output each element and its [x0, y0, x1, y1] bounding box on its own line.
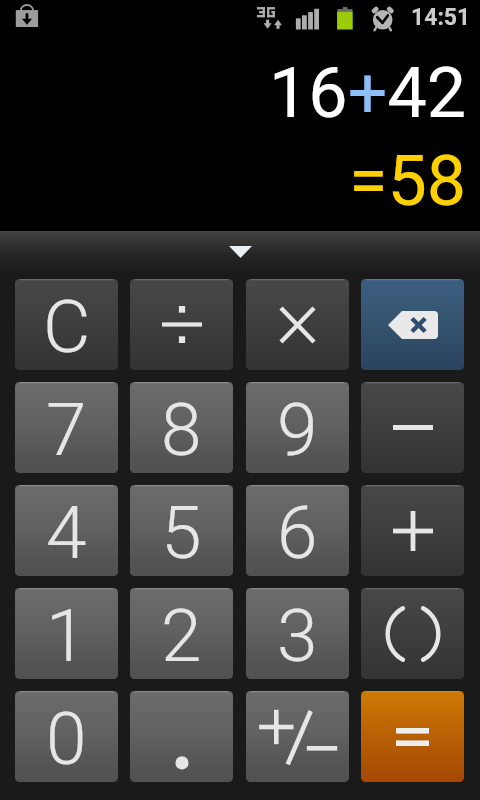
button[interactable]: 4 [15, 485, 118, 576]
staticText: 14:51 [411, 4, 471, 31]
button[interactable]: Decimal point [130, 691, 233, 782]
staticText: 7 [46, 387, 87, 473]
button[interactable]: 2 [130, 588, 233, 679]
button[interactable]: Collapse keypad [0, 231, 480, 272]
staticText: 0 [46, 696, 87, 782]
button[interactable]: 5 [130, 485, 233, 576]
staticText: 6 [277, 490, 318, 576]
staticText: 2 [161, 593, 202, 679]
staticText: 9 [277, 387, 318, 473]
button[interactable]: 6 [246, 485, 349, 576]
button[interactable]: Divide [130, 279, 233, 370]
button[interactable]: 0 [15, 691, 118, 782]
button[interactable]: Parentheses [361, 588, 464, 679]
staticText: 3 [277, 593, 318, 679]
button[interactable]: Add [361, 485, 464, 576]
staticText: C [43, 284, 91, 370]
button[interactable]: Plus minus [246, 691, 349, 782]
button[interactable]: Delete [361, 279, 464, 370]
button[interactable]: 9 [246, 382, 349, 473]
button[interactable]: 8 [130, 382, 233, 473]
button[interactable]: Equals [361, 691, 464, 782]
button[interactable]: 3 [246, 588, 349, 679]
staticText: 1 [46, 593, 87, 679]
staticText: 8 [161, 387, 202, 473]
button[interactable]: C [15, 279, 118, 370]
staticText: 16+42 [269, 52, 467, 134]
button[interactable]: 1 [15, 588, 118, 679]
button[interactable]: Subtract [361, 382, 464, 473]
button[interactable]: 7 [15, 382, 118, 473]
staticText: =58 [349, 140, 467, 222]
staticText: 5 [161, 490, 202, 576]
button[interactable]: Multiply [246, 279, 349, 370]
staticText: 4 [46, 490, 87, 576]
